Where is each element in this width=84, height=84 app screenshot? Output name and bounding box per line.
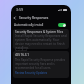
staticText: This Rapid Security Response provides im… bbox=[15, 58, 67, 70]
staticText: Review Security Updates bbox=[15, 71, 48, 75]
button[interactable]: Back bbox=[11, 14, 19, 22]
staticText: 3:59 bbox=[16, 7, 24, 12]
staticText: iOS 16.3.1 bbox=[15, 53, 30, 57]
button[interactable]: Automatically install bbox=[14, 22, 66, 28]
staticText: Security Responses & System Files bbox=[15, 30, 64, 34]
staticText: Automatically install bbox=[14, 23, 44, 27]
button[interactable]: Review Security Updates bbox=[15, 71, 48, 75]
staticText: Install Rapid Security Responses and sys… bbox=[15, 34, 67, 49]
staticText: Installed bbox=[15, 49, 27, 53]
staticText: Security Responses bbox=[19, 16, 49, 20]
